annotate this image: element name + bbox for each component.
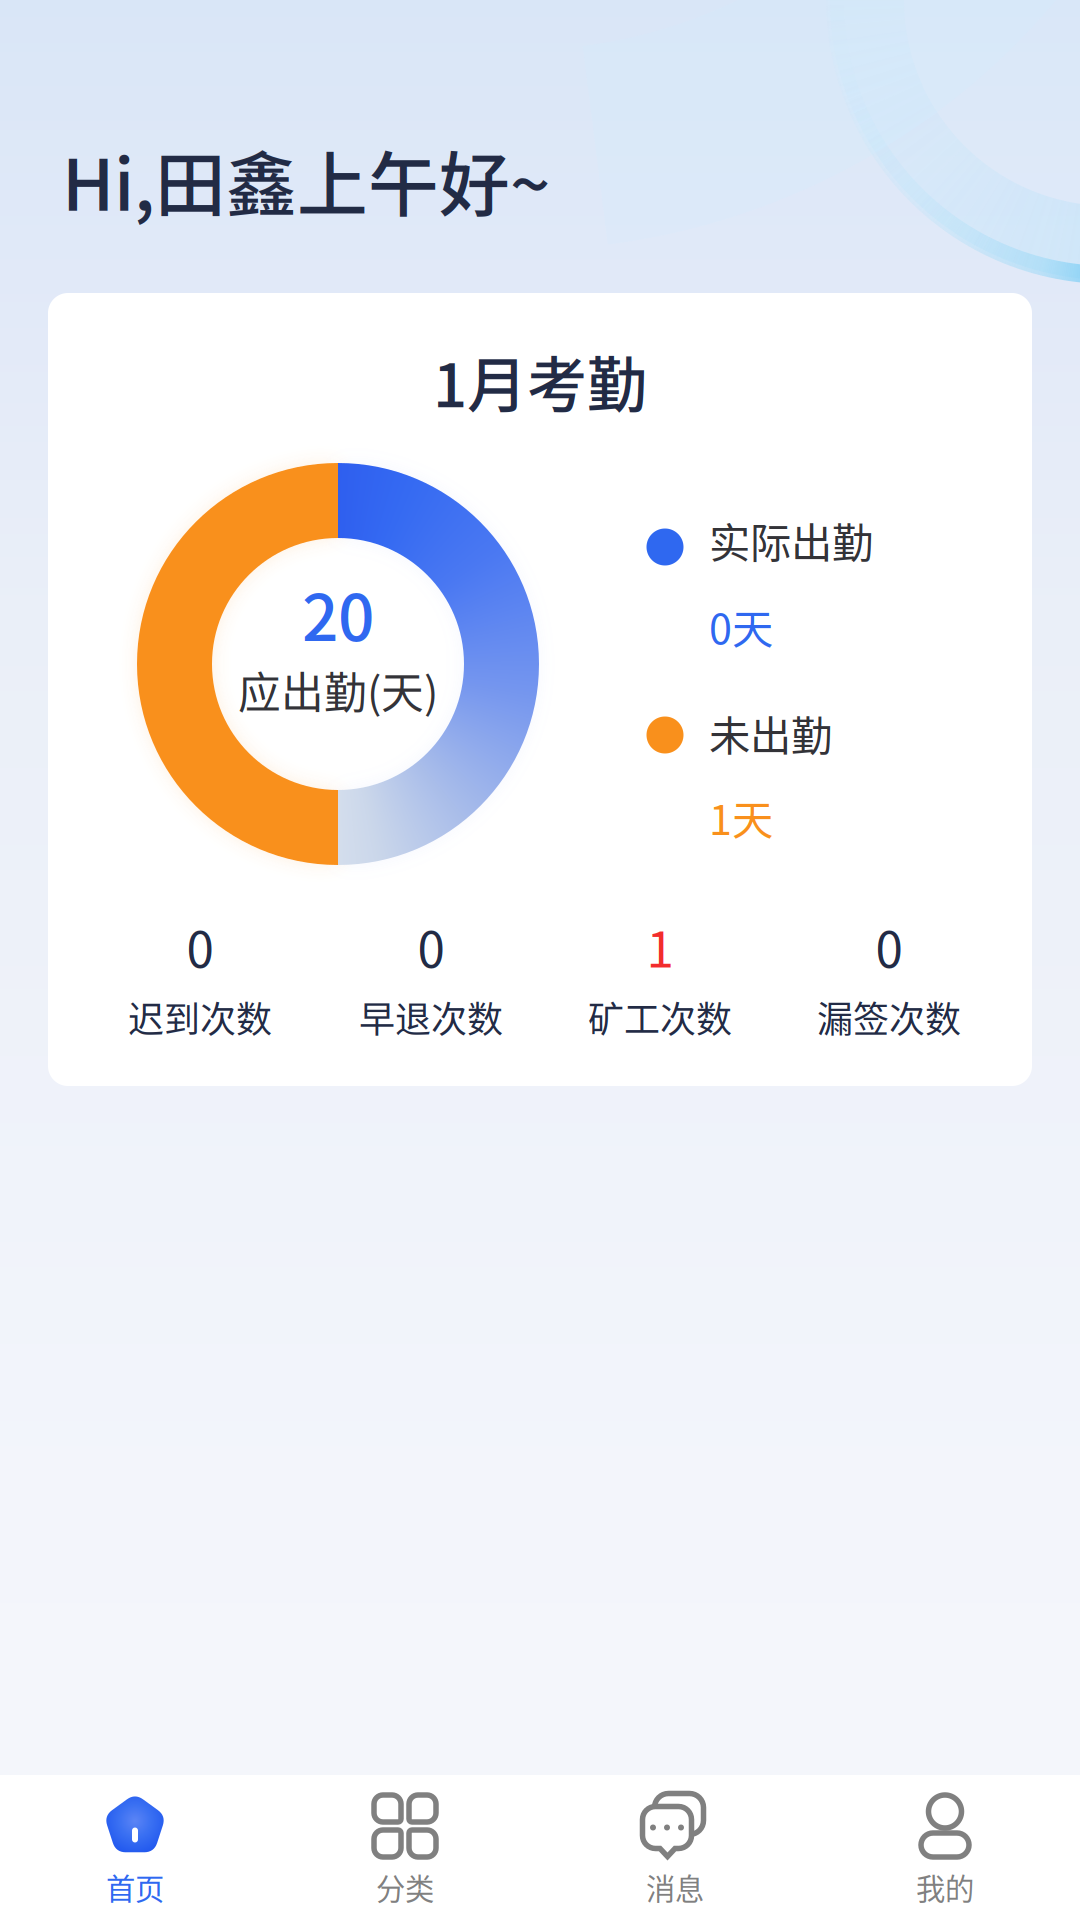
staticText: 0天 (709, 596, 773, 656)
staticText: 0 (417, 910, 444, 982)
staticText: 1月考勤 (433, 338, 647, 424)
staticText: 未出勤 (709, 703, 832, 763)
staticText: 矿工次数 (588, 991, 732, 1043)
staticText: 20 (302, 567, 374, 659)
staticText: 0 (186, 910, 213, 982)
staticText: 1天 (709, 787, 773, 847)
staticText: 漏签次数 (817, 991, 961, 1043)
staticText: 早退次数 (359, 991, 503, 1043)
button[interactable]: 我的 (810, 1775, 1080, 1920)
staticText: 我的 (916, 1866, 974, 1908)
staticText: 应出勤(天) (238, 659, 438, 721)
staticText: 迟到次数 (128, 991, 272, 1043)
staticText: 消息 (646, 1866, 704, 1908)
staticText: 0 (875, 910, 902, 982)
staticText: 分类 (376, 1866, 434, 1908)
button[interactable]: 消息 (540, 1775, 810, 1920)
staticText: Hi,田鑫上午好~ (62, 129, 550, 231)
staticText: 1 (646, 910, 673, 982)
button[interactable]: 首页 (0, 1775, 270, 1920)
staticText: 实际出勤 (709, 510, 873, 570)
button[interactable]: 分类 (270, 1775, 540, 1920)
staticText: 首页 (106, 1866, 164, 1908)
